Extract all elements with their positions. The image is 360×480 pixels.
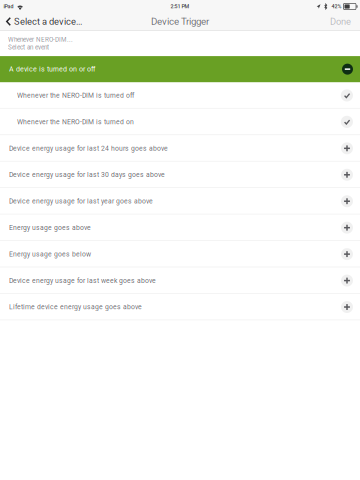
staticText: 2:51 PM [170,3,189,10]
staticText: Select an event [8,44,49,51]
staticText: Whenever NERO-DIM... [8,36,73,43]
button[interactable]: Done [322,13,360,30]
staticText: Energy usage goes above [9,224,91,232]
staticText: Select a device... [14,16,82,27]
button[interactable]: Device energy usage for last 30 days goe… [0,161,360,188]
button[interactable]: Energy usage goes below [0,241,360,267]
staticText: A device is turned on or off [9,65,95,73]
button[interactable]: Device energy usage for last week goes a… [0,267,360,294]
staticText: Device energy usage for last 24 hours go… [9,144,168,152]
staticText: Done [330,16,351,27]
staticText: Whenever the NERO-DIM is turned on [17,118,134,126]
staticText: Device energy usage for last 30 days goe… [9,171,165,179]
staticText: Device Trigger [151,16,209,27]
staticText: 42% [331,3,341,10]
staticText: Device energy usage for last week goes a… [9,277,156,285]
button[interactable]: Device energy usage for last year goes a… [0,188,360,214]
button[interactable]: Device energy usage for last 24 hours go… [0,135,360,161]
button[interactable]: Whenever the NERO-DIM is turned off [0,82,360,109]
button[interactable]: Select a device... [0,13,88,30]
staticText: Device energy usage for last year goes a… [9,197,153,205]
staticText: Whenever the NERO-DIM is turned off [17,91,134,99]
button[interactable]: Whenever the NERO-DIM is turned on [0,109,360,135]
staticText: Energy usage goes below [9,250,91,258]
button[interactable]: Lifetime device energy usage goes above [0,294,360,320]
button[interactable]: A device is turned on or off [0,56,360,82]
staticText: Lifetime device energy usage goes above [9,303,142,311]
button[interactable]: Energy usage goes above [0,214,360,241]
staticText: iPad [3,3,13,10]
